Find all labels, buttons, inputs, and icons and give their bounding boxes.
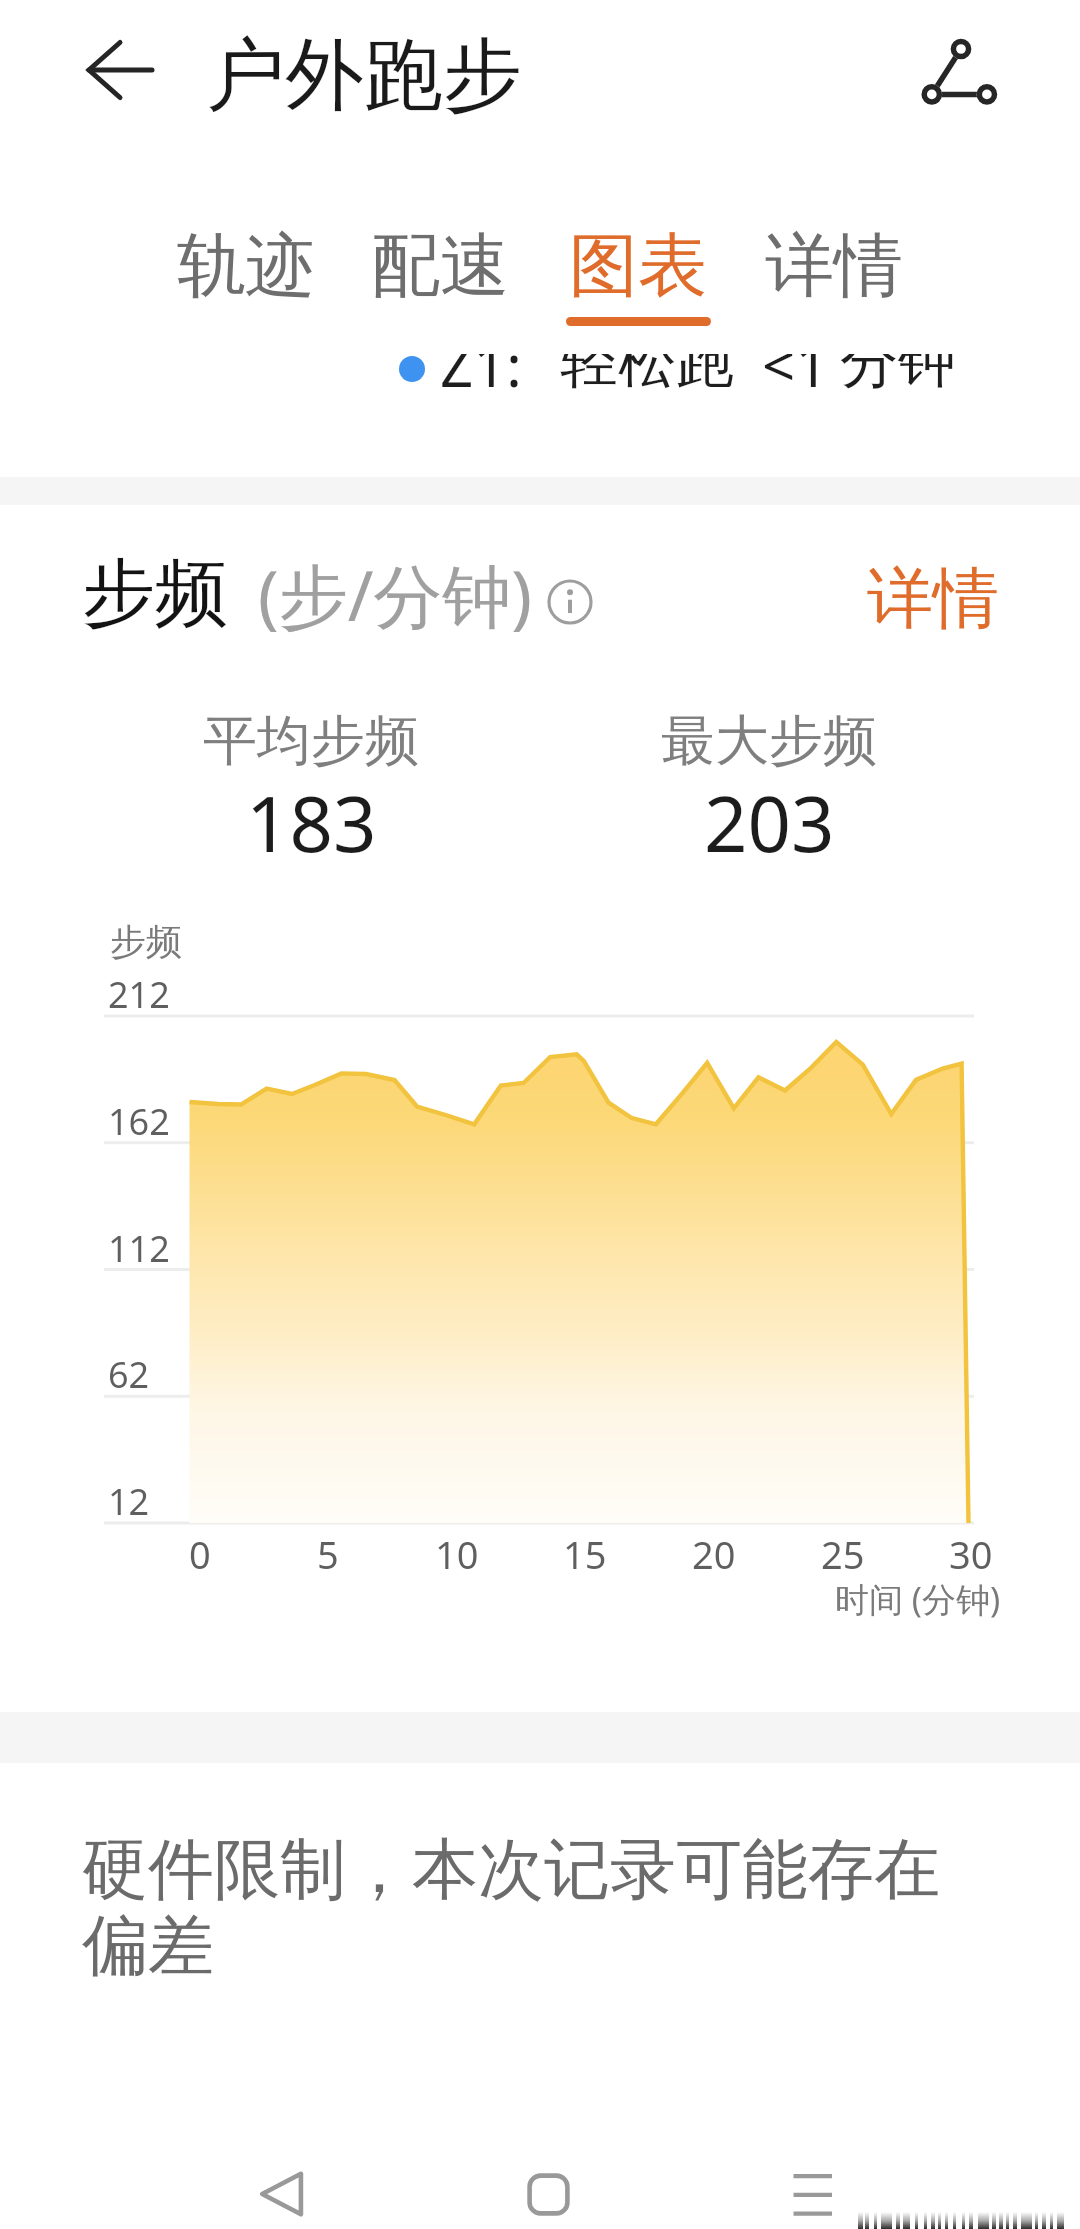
staticText: 详情 bbox=[765, 223, 903, 310]
staticText: 图表 bbox=[569, 223, 707, 310]
staticText: 户外跑步 bbox=[206, 26, 522, 126]
staticText: 30 bbox=[949, 1528, 993, 1578]
staticText: 12 bbox=[108, 1477, 150, 1521]
button[interactable]: 配速 bbox=[359, 221, 523, 339]
button[interactable]: 详情 bbox=[850, 550, 1016, 646]
button[interactable]: Home bbox=[488, 2134, 608, 2229]
staticText: 详情 bbox=[867, 557, 999, 640]
button[interactable]: 最大步频 bbox=[549, 707, 989, 775]
staticText: 10 bbox=[435, 1528, 479, 1578]
button[interactable]: Share bbox=[896, 12, 1024, 140]
staticText: 20 bbox=[692, 1528, 736, 1578]
staticText: 轨迹 bbox=[177, 223, 315, 310]
staticText: 配速 bbox=[371, 223, 509, 310]
button[interactable]: Back bbox=[222, 2134, 342, 2229]
staticText: 平均步频 bbox=[203, 707, 419, 775]
button[interactable]: 图表 bbox=[557, 221, 721, 339]
staticText: 212 bbox=[108, 970, 170, 1014]
button[interactable]: 轨迹 bbox=[165, 221, 329, 339]
staticText: 25 bbox=[821, 1528, 865, 1578]
staticText: 183 bbox=[246, 771, 377, 875]
staticText: Z1: bbox=[440, 325, 522, 404]
staticText: 203 bbox=[704, 771, 835, 875]
staticText: 硬件限制，本次记录可能存在偏差 bbox=[82, 1828, 982, 1987]
staticText: 112 bbox=[108, 1224, 170, 1268]
button[interactable]: Recent apps bbox=[755, 2134, 875, 2229]
staticText: 5 bbox=[317, 1528, 339, 1578]
staticText: 时间 (分钟) bbox=[835, 1576, 1001, 1622]
button[interactable] bbox=[380, 354, 980, 390]
staticText: 步频 bbox=[82, 548, 228, 640]
staticText: 步频 bbox=[110, 919, 182, 964]
staticText: <1 bbox=[762, 325, 829, 404]
staticText: 分钟 bbox=[840, 325, 956, 398]
button[interactable]: Back bbox=[59, 10, 179, 130]
staticText: 最大步频 bbox=[661, 707, 877, 775]
staticText: 62 bbox=[108, 1350, 150, 1394]
button[interactable]: 详情 bbox=[753, 221, 917, 339]
button[interactable]: 平均步频 bbox=[91, 707, 531, 775]
staticText: 0 bbox=[189, 1528, 211, 1578]
staticText: 15 bbox=[563, 1528, 607, 1578]
staticText: (步/分钟) bbox=[258, 547, 533, 641]
staticText: 162 bbox=[108, 1097, 170, 1141]
staticText: 轻松跑 bbox=[560, 325, 734, 398]
